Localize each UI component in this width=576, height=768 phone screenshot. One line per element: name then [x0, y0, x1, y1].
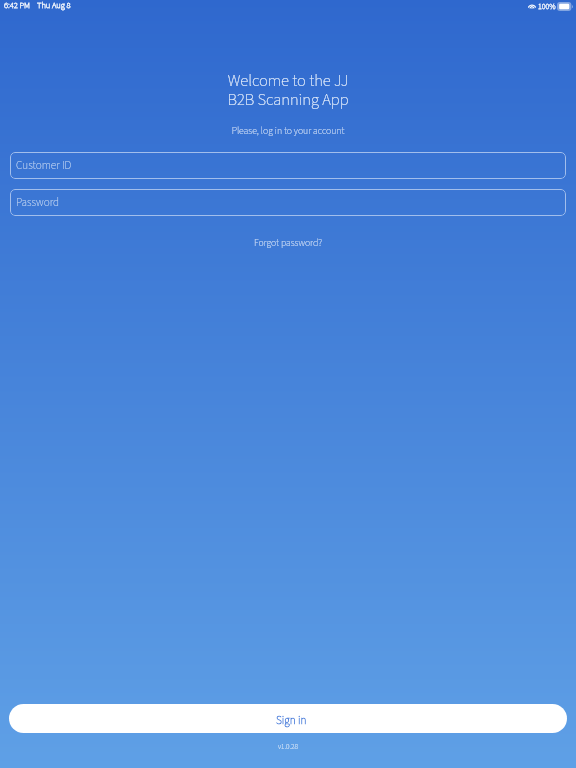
staticText: 100% [538, 1, 556, 12]
other: Battery 100 percent [557, 2, 573, 11]
staticText: Thu Aug 8 [37, 0, 71, 11]
staticText: Customer ID [16, 157, 72, 173]
staticText: Welcome to the JJ B2B Scanning App [0, 69, 576, 111]
staticText: Password [16, 194, 60, 210]
staticText: 6:42 PM [4, 0, 31, 11]
staticText: Sign in [276, 712, 307, 728]
other: Wi-Fi [528, 3, 536, 9]
staticText: v1.0.28 [0, 741, 576, 752]
staticText: Please, log in to your account [0, 124, 576, 138]
button[interactable]: Customer ID [10, 152, 566, 179]
button[interactable]: Sign in [9, 704, 567, 733]
button[interactable]: Forgot password? [0, 236, 576, 250]
button[interactable]: Password [10, 189, 566, 216]
